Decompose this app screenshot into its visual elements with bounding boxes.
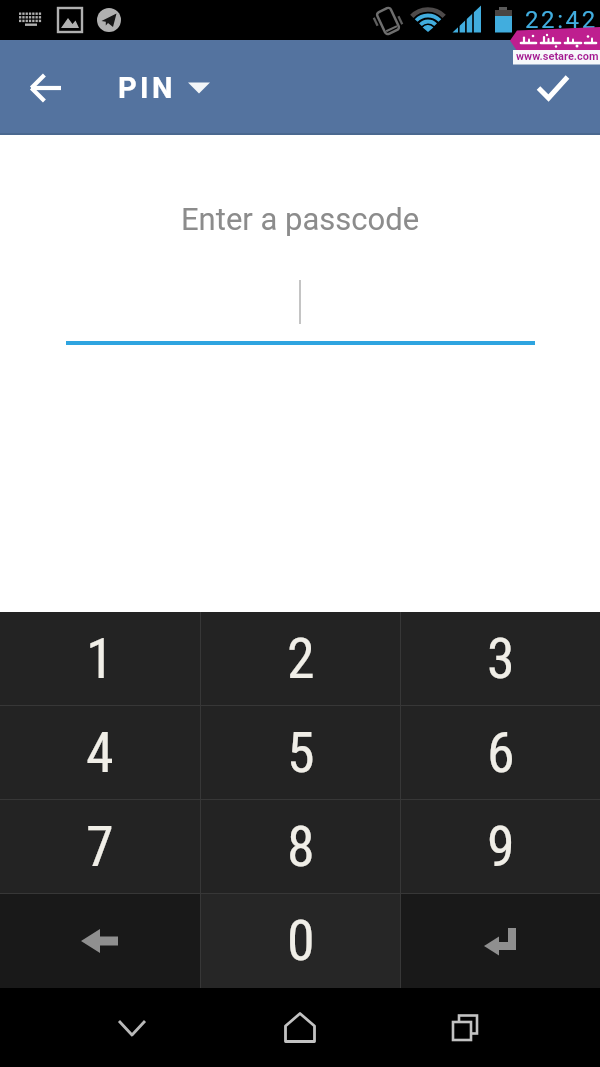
button[interactable]: 0 xyxy=(201,894,400,988)
staticText: 3 xyxy=(487,626,515,692)
staticText: 0 xyxy=(287,908,315,974)
button[interactable] xyxy=(401,894,600,988)
button[interactable] xyxy=(66,265,535,345)
staticText: 1 xyxy=(86,626,114,692)
button[interactable]: 3 xyxy=(401,612,600,705)
button[interactable]: 6 xyxy=(401,706,600,799)
button[interactable] xyxy=(0,894,200,988)
staticText: Enter a passcode xyxy=(181,201,420,237)
staticText: 9 xyxy=(487,814,515,880)
button[interactable] xyxy=(92,988,172,1067)
button[interactable]: 9 xyxy=(401,800,600,893)
button[interactable] xyxy=(260,988,340,1067)
staticText: 22:42 xyxy=(525,6,598,34)
button[interactable] xyxy=(425,988,505,1067)
button[interactable] xyxy=(18,60,74,116)
button[interactable]: 8 xyxy=(201,800,400,893)
button[interactable]: 1 xyxy=(0,612,200,705)
staticText: 2 xyxy=(287,626,315,692)
staticText: 4 xyxy=(86,720,114,786)
staticText: 8 xyxy=(287,814,315,880)
button[interactable]: 7 xyxy=(0,800,200,893)
staticText: www.setare.com xyxy=(516,50,599,63)
button[interactable]: PIN xyxy=(118,71,210,105)
button[interactable]: 5 xyxy=(201,706,400,799)
button[interactable]: 4 xyxy=(0,706,200,799)
button[interactable]: 2 xyxy=(201,612,400,705)
staticText: 5 xyxy=(287,720,315,786)
staticText: 6 xyxy=(487,720,515,786)
staticText: PIN xyxy=(118,71,176,105)
button[interactable] xyxy=(527,62,579,114)
staticText: 7 xyxy=(86,814,114,880)
